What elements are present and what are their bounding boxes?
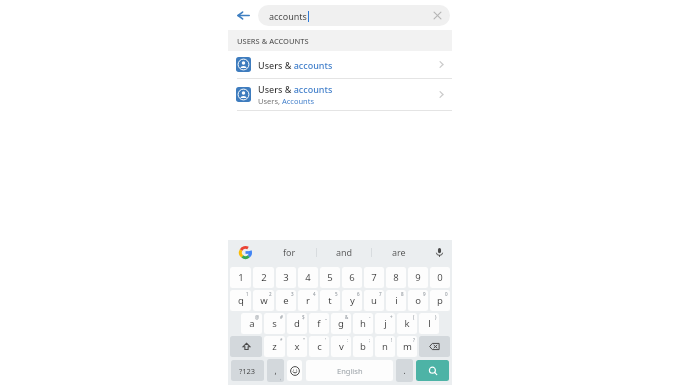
staticText: ,	[280, 375, 282, 381]
button[interactable]: q	[230, 290, 251, 311]
staticText: y	[350, 294, 355, 307]
button[interactable]: i	[386, 290, 406, 311]
button[interactable]: 7	[364, 267, 384, 288]
button[interactable]: Backspace	[419, 336, 450, 357]
staticText: "	[303, 337, 305, 343]
staticText: u	[371, 294, 377, 307]
button[interactable]: 6	[342, 267, 362, 288]
button[interactable]: o	[408, 290, 428, 311]
button[interactable]: 9	[408, 267, 428, 288]
button[interactable]: u	[364, 290, 384, 311]
button[interactable]: j	[375, 313, 395, 334]
button[interactable]: p	[430, 290, 450, 311]
button[interactable]: e	[276, 290, 296, 311]
button[interactable]: d	[287, 313, 307, 334]
button[interactable]: c	[309, 336, 329, 357]
button[interactable]: 3	[276, 267, 296, 288]
staticText: #	[280, 314, 283, 320]
button[interactable]: 5	[320, 267, 340, 288]
button[interactable]: 0	[430, 267, 450, 288]
staticText: j	[384, 317, 387, 330]
staticText: ?	[413, 337, 415, 343]
button[interactable]: v	[331, 336, 351, 357]
staticText: English	[337, 366, 363, 376]
button[interactable]: x	[287, 336, 307, 357]
button[interactable]: Shift	[230, 336, 262, 357]
staticText: @	[255, 314, 260, 320]
staticText: i	[395, 294, 398, 307]
button[interactable]: are	[372, 240, 426, 264]
button[interactable]: g	[331, 313, 351, 334]
staticText: z	[272, 340, 277, 353]
button[interactable]: s	[264, 313, 285, 334]
button[interactable]: Clear	[424, 5, 450, 26]
staticText: 8	[401, 291, 404, 297]
staticText: _	[325, 314, 327, 320]
button[interactable]: k	[397, 313, 417, 334]
staticText: 1	[246, 291, 249, 297]
staticText: for	[283, 246, 296, 258]
button[interactable]: Back	[228, 0, 258, 30]
staticText: Users & accounts	[258, 83, 333, 95]
staticText: Users & accounts	[258, 59, 333, 71]
button[interactable]: 1	[230, 267, 251, 288]
staticText: c	[317, 340, 322, 353]
staticText: x	[294, 340, 300, 353]
staticText: 9	[423, 291, 426, 297]
button[interactable]: 8	[386, 267, 406, 288]
button[interactable]: .	[396, 359, 413, 382]
button[interactable]: Search	[416, 360, 449, 381]
button[interactable]: f	[309, 313, 329, 334]
button[interactable]: Users & accounts	[228, 79, 452, 111]
staticText: f	[317, 317, 321, 330]
button[interactable]: a	[241, 313, 262, 334]
button[interactable]: t	[320, 290, 340, 311]
staticText: USERS & ACCOUNTS	[237, 36, 309, 46]
staticText: 7	[379, 291, 382, 297]
staticText: are	[392, 246, 406, 258]
button[interactable]: m	[397, 336, 417, 357]
button[interactable]: r	[298, 290, 318, 311]
button[interactable]: n	[375, 336, 395, 357]
staticText: 3	[291, 291, 294, 297]
button[interactable]: b	[353, 336, 373, 357]
button[interactable]: for	[262, 240, 316, 264]
staticText: p	[437, 294, 443, 307]
staticText: 0	[437, 271, 443, 284]
button[interactable]: and	[317, 240, 371, 264]
staticText: 3	[283, 271, 289, 284]
staticText: v	[339, 340, 344, 353]
staticText: accounts	[269, 10, 307, 22]
button[interactable]: h	[353, 313, 373, 334]
staticText: 8	[393, 271, 399, 284]
button[interactable]: 4	[298, 267, 318, 288]
staticText: 5	[327, 271, 333, 284]
staticText: ;	[369, 337, 371, 343]
staticText: l	[428, 317, 431, 330]
staticText: w	[260, 294, 268, 307]
staticText: *	[280, 337, 283, 343]
staticText: 4	[313, 291, 316, 297]
staticText: d	[294, 317, 300, 330]
staticText: -	[369, 314, 371, 320]
staticText: e	[283, 294, 289, 307]
button[interactable]: ?123	[231, 360, 264, 381]
button[interactable]: z	[264, 336, 285, 357]
button[interactable]: l	[419, 313, 439, 334]
button[interactable]: accounts	[258, 5, 450, 26]
button[interactable]: ,	[267, 359, 284, 382]
staticText: t	[328, 294, 332, 307]
staticText: g	[338, 317, 344, 330]
staticText: q	[238, 294, 244, 307]
button[interactable]: Users & accounts	[228, 51, 452, 79]
button[interactable]: English	[306, 360, 393, 381]
button[interactable]: Google	[228, 240, 262, 264]
button[interactable]: w	[253, 290, 274, 311]
button[interactable]: Emoji	[287, 360, 302, 381]
button[interactable]: y	[342, 290, 362, 311]
staticText: 6	[357, 291, 360, 297]
button[interactable]: 2	[253, 267, 274, 288]
staticText: ,	[274, 365, 277, 376]
button[interactable]: Voice input	[426, 240, 452, 264]
staticText: 7	[371, 271, 377, 284]
